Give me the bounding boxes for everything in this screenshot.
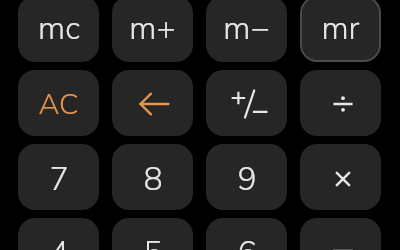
staticText: mc [38, 7, 80, 51]
button[interactable]: 9 [206, 144, 287, 210]
staticText: 9 [237, 158, 257, 202]
button[interactable]: Multiply [300, 144, 381, 210]
button[interactable]: 5 [112, 218, 193, 250]
staticText: m+ [129, 7, 176, 51]
staticText: 7 [49, 158, 69, 202]
button[interactable]: Backspace [112, 70, 193, 136]
button[interactable]: m+ [112, 0, 193, 62]
staticText: 4 [49, 232, 69, 250]
staticText: 5 [143, 232, 163, 250]
button[interactable]: Divide [300, 70, 381, 136]
staticText: m− [223, 7, 270, 51]
staticText: AC [38, 85, 79, 125]
staticText: mr [321, 7, 360, 51]
button[interactable]: All clear [18, 70, 99, 136]
button[interactable]: mc [18, 0, 99, 62]
button[interactable]: Plus minus [206, 70, 287, 136]
button[interactable]: 6 [206, 218, 287, 250]
button[interactable]: 8 [112, 144, 193, 210]
button[interactable]: mr [300, 0, 381, 62]
button[interactable]: 7 [18, 144, 99, 210]
button[interactable]: m minus [206, 0, 287, 62]
staticText: 6 [237, 232, 257, 250]
button[interactable]: Minus [300, 218, 381, 250]
button[interactable]: 4 [18, 218, 99, 250]
staticText: 8 [143, 158, 163, 202]
